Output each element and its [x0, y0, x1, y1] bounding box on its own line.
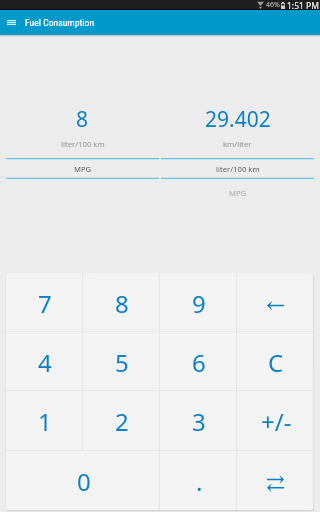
button[interactable]: C [237, 332, 313, 390]
staticText: 3 [192, 405, 206, 438]
button[interactable]: 5 [83, 332, 159, 390]
staticText: 7 [38, 287, 52, 320]
staticText: +/- [261, 405, 292, 438]
staticText: MPG [229, 188, 247, 198]
staticText: MPG [74, 164, 92, 174]
staticText: 6 [192, 346, 206, 379]
button[interactable]: 6 [160, 332, 236, 390]
staticText: 9 [192, 287, 206, 320]
staticText: 0 [77, 465, 91, 498]
button[interactable]: Swap units [237, 451, 313, 510]
staticText: Fuel Consumption [25, 17, 95, 28]
button[interactable]: Open navigation drawer [0, 10, 23, 35]
staticText: C [268, 346, 284, 379]
button[interactable]: 9 [160, 273, 236, 331]
button[interactable]: 4 [6, 332, 82, 390]
staticText: liter/100 km [61, 139, 105, 149]
staticText: liter/100 km [216, 164, 260, 174]
staticText: . [196, 465, 203, 498]
button[interactable]: . [160, 451, 236, 510]
button[interactable]: liter/100 km [161, 158, 314, 179]
staticText: 8 [76, 105, 89, 134]
button[interactable]: 0 [6, 451, 159, 510]
button[interactable]: +/- [237, 391, 313, 450]
button[interactable]: 2 [83, 391, 159, 450]
staticText: 8 [115, 287, 129, 320]
staticText: 29.402 [205, 105, 271, 134]
button[interactable]: MPG [6, 158, 159, 179]
staticText: 4 [38, 346, 52, 379]
staticText: 46% [266, 0, 280, 10]
button[interactable]: 7 [6, 273, 82, 331]
button[interactable]: Backspace [237, 273, 313, 331]
staticText: 5 [115, 346, 129, 379]
staticText: km/liter [223, 139, 252, 149]
button[interactable]: 8 [83, 273, 159, 331]
staticText: 1:51 PM [287, 0, 319, 10]
button[interactable]: 3 [160, 391, 236, 450]
button[interactable]: MPG [161, 183, 314, 202]
staticText: 2 [115, 405, 129, 438]
button[interactable]: 1 [6, 391, 82, 450]
staticText: 1 [38, 405, 52, 438]
